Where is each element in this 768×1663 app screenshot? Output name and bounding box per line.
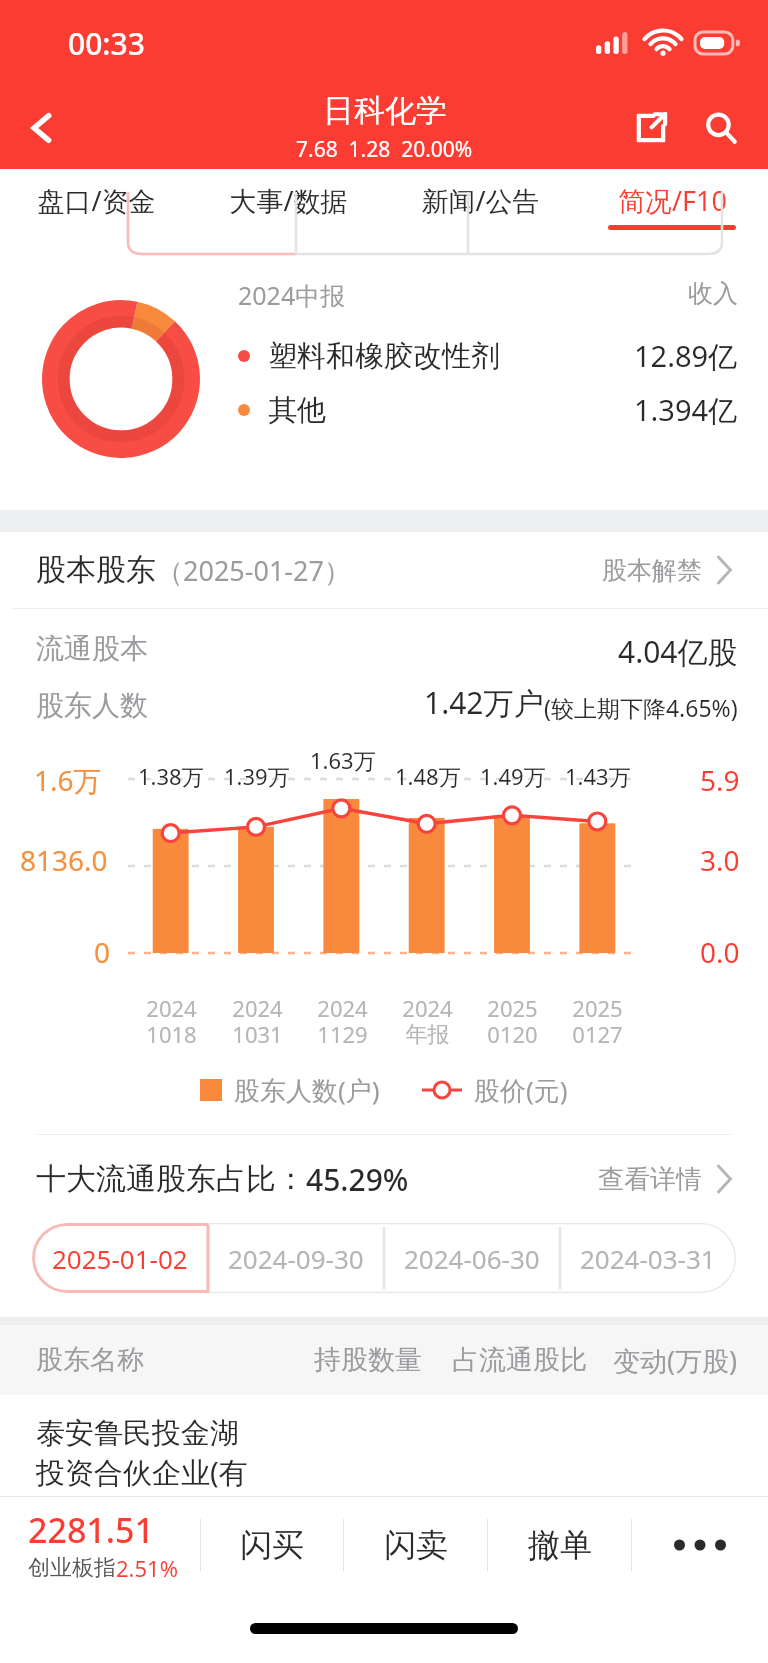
button[interactable]: 大事/数据 bbox=[192, 169, 384, 232]
button[interactable]: 简况/F10 bbox=[576, 169, 768, 232]
staticText: 4.04亿股 bbox=[618, 631, 738, 672]
staticText: 2024-03-31 bbox=[580, 1241, 716, 1276]
staticText: 股本股东 bbox=[36, 551, 156, 589]
staticText: 2024 1018 bbox=[146, 993, 197, 1050]
staticText: 新闻/公告 bbox=[421, 182, 540, 219]
staticText: 日科化学 bbox=[323, 91, 447, 130]
staticText: 2281.51 bbox=[28, 1507, 154, 1553]
staticText: 简况/F10 bbox=[618, 182, 727, 219]
staticText: 盘口/资金 bbox=[37, 182, 156, 219]
staticText: 1.39万 bbox=[224, 761, 290, 791]
button[interactable]: 闪卖 bbox=[344, 1497, 487, 1593]
staticText: 2025 0127 bbox=[572, 993, 623, 1050]
staticText: 塑料和橡胶改性剂 bbox=[268, 338, 500, 375]
staticText: 占流通股比 bbox=[452, 1343, 587, 1377]
button[interactable]: 2024-09-30 bbox=[208, 1223, 384, 1293]
staticText: 闪卖 bbox=[384, 1525, 448, 1565]
staticText: 查看详情 bbox=[598, 1163, 702, 1196]
staticText: 收入 bbox=[688, 278, 738, 309]
button[interactable]: 盘口/资金 bbox=[0, 169, 192, 232]
button[interactable]: Back bbox=[8, 94, 76, 162]
button[interactable]: 股本股东 bbox=[0, 532, 768, 608]
button[interactable]: 2024-06-30 bbox=[384, 1223, 560, 1293]
staticText: 2024-09-30 bbox=[228, 1241, 364, 1276]
button[interactable]: Search bbox=[690, 97, 752, 159]
staticText: 股本解禁 bbox=[602, 555, 702, 586]
staticText: 撤单 bbox=[528, 1525, 592, 1565]
staticText: 1.49万 bbox=[480, 761, 546, 791]
staticText: 股东人数(户) bbox=[234, 1072, 380, 1108]
button[interactable]: 2024-03-31 bbox=[560, 1223, 736, 1293]
staticText: 3.0 bbox=[700, 841, 740, 879]
staticText: 2024中报 bbox=[238, 278, 346, 312]
button[interactable]: 2025-01-02 bbox=[32, 1223, 208, 1293]
staticText: 12.89亿 bbox=[634, 336, 738, 376]
staticText: 1.394亿 bbox=[634, 390, 738, 430]
staticText: 00:33 bbox=[68, 23, 145, 64]
staticText: 创业板指 bbox=[28, 1554, 116, 1582]
button[interactable]: 2281.51 bbox=[28, 1507, 200, 1583]
staticText: 其他 bbox=[268, 392, 326, 429]
button[interactable]: 撤单 bbox=[488, 1497, 631, 1593]
staticText: 0 bbox=[94, 933, 111, 971]
staticText: 变动(万股) bbox=[613, 1342, 738, 1379]
staticText: 2025-01-02 bbox=[52, 1241, 188, 1276]
button[interactable]: Share bbox=[620, 97, 682, 159]
button[interactable]: More bbox=[632, 1497, 768, 1593]
staticText: 股东人数 bbox=[36, 688, 148, 723]
button[interactable]: 十大流通股东占比： bbox=[0, 1135, 768, 1223]
staticText: 1.42万户 bbox=[424, 682, 544, 723]
staticText: 2024 年报 bbox=[402, 993, 453, 1049]
staticText: 2024 1129 bbox=[317, 993, 368, 1050]
staticText: (较上期下降4.65%) bbox=[544, 692, 738, 723]
staticText: 7.68 1.28 20.00% bbox=[296, 135, 473, 164]
staticText: 股东名称 bbox=[36, 1343, 144, 1377]
staticText: 0.0 bbox=[700, 933, 740, 971]
staticText: 投资合伙企业(有 bbox=[36, 1452, 248, 1492]
button[interactable]: 新闻/公告 bbox=[384, 169, 576, 232]
staticText: 1.38万 bbox=[138, 761, 204, 791]
staticText: 十大流通股东占比： bbox=[36, 1160, 306, 1198]
staticText: 泰安鲁民投金湖 bbox=[36, 1415, 239, 1452]
staticText: 1.63万 bbox=[310, 745, 376, 775]
staticText: 大事/数据 bbox=[229, 182, 348, 219]
staticText: 2025 0120 bbox=[487, 993, 538, 1050]
staticText: 8136.0 bbox=[20, 841, 108, 879]
staticText: 1.48万 bbox=[395, 761, 461, 791]
staticText: 流通股本 bbox=[36, 631, 148, 666]
staticText: （2025-01-27） bbox=[156, 552, 351, 589]
staticText: 2024-06-30 bbox=[404, 1241, 540, 1276]
staticText: 2024 1031 bbox=[232, 993, 283, 1050]
staticText: 5.9 bbox=[700, 761, 740, 799]
staticText: 1.6万 bbox=[34, 761, 102, 799]
staticText: 持股数量 bbox=[314, 1343, 422, 1377]
staticText: 2.51% bbox=[116, 1553, 178, 1583]
button[interactable]: 闪买 bbox=[201, 1497, 343, 1593]
staticText: 1.43万 bbox=[565, 761, 631, 791]
staticText: 闪买 bbox=[240, 1525, 304, 1565]
staticText: 股价(元) bbox=[474, 1072, 568, 1108]
staticText: 45.29% bbox=[306, 1159, 409, 1200]
